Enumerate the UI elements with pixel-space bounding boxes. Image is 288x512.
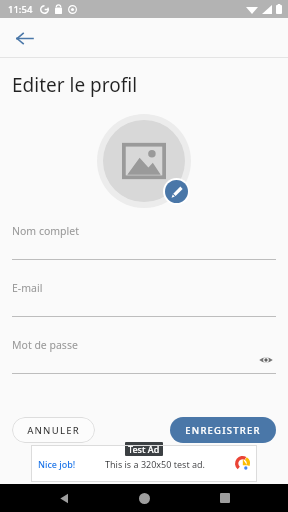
- staticText: Nice job!: [38, 458, 76, 470]
- button[interactable]: E-mail: [0, 279, 288, 316]
- button[interactable]: Back: [4, 18, 44, 58]
- staticText: Nom complet: [12, 224, 79, 238]
- staticText: Test Ad: [128, 443, 160, 455]
- staticText: Editer le profil: [12, 72, 138, 98]
- button[interactable]: Nom complet: [0, 222, 288, 259]
- button[interactable]: ENREGISTRER: [170, 417, 276, 443]
- staticText: ENREGISTRER: [185, 424, 261, 437]
- staticText: E-mail: [12, 281, 43, 295]
- staticText: ANNULER: [27, 424, 80, 437]
- staticText: This is a 320x50 test ad.: [105, 458, 205, 470]
- staticText: 11:54: [8, 3, 33, 16]
- button[interactable]: Show password: [254, 348, 278, 372]
- staticText: Mot de passe: [12, 338, 78, 352]
- button[interactable]: Change profile photo: [103, 120, 185, 202]
- button[interactable]: Back: [47, 484, 81, 512]
- button[interactable]: Test advertisement: [31, 445, 257, 482]
- button[interactable]: Edit photo: [165, 180, 188, 203]
- button[interactable]: Recent apps: [208, 484, 242, 512]
- button[interactable]: Home: [127, 484, 161, 512]
- button[interactable]: Mot de passe: [0, 336, 288, 373]
- button[interactable]: ANNULER: [12, 417, 95, 443]
